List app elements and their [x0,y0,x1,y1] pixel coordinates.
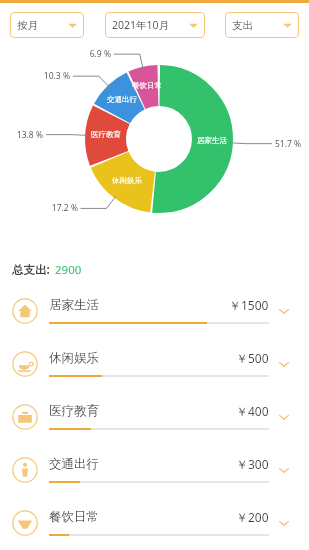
staticText: 支出 [232,19,253,32]
staticText: 休闲娱乐 [103,176,151,185]
other: 医疗教育 [12,404,38,430]
other: 休闲娱乐 [12,351,38,377]
button[interactable]: 2021年10月 [105,12,205,38]
staticText: 10.3 % [30,70,70,82]
button[interactable]: 展开 休闲娱乐 [269,344,299,384]
staticText: ￥400 [236,403,269,419]
button[interactable]: 休闲娱乐 [0,337,309,390]
other: 交通出行 [12,457,38,483]
button[interactable]: 餐饮日常 [0,496,309,549]
staticText: 6.9 % [71,48,111,60]
staticText: 13.8 % [3,129,43,141]
staticText: 按月 [17,19,38,32]
staticText: ￥300 [236,456,269,472]
button[interactable]: 按月 [10,12,84,38]
staticText: 2900 [55,262,82,278]
staticText: ￥1500 [229,297,269,313]
staticText: 居家生活 [49,297,99,313]
button[interactable]: 展开 居家生活 [269,291,299,331]
staticText: 餐饮日常 [49,509,99,525]
staticText: 休闲娱乐 [49,350,99,366]
button[interactable]: 展开 餐饮日常 [269,503,299,543]
staticText: 交通出行 [49,456,99,472]
button[interactable]: 展开 医疗教育 [269,397,299,437]
staticText: ￥500 [236,350,269,366]
staticText: 医疗教育 [49,403,99,419]
button[interactable]: 支出 [225,12,299,38]
staticText: 2021年10月 [112,18,170,32]
staticText: 17.2 % [38,202,78,214]
staticText: 医疗教育 [82,130,130,139]
button[interactable]: 展开 交通出行 [269,450,299,490]
button[interactable]: 交通出行 [0,443,309,496]
staticText: ￥200 [236,509,269,525]
staticText: 51.7 % [275,138,309,150]
staticText: 居家生活 [188,136,236,145]
button[interactable]: 居家生活 [0,284,309,337]
staticText: 总支出: [12,262,50,278]
button[interactable]: 医疗教育 [0,390,309,443]
other: 餐饮日常 [12,510,38,536]
staticText: 交通出行 [98,95,146,104]
staticText: 餐饮日常 [123,81,171,90]
other: 居家生活 [12,298,38,324]
